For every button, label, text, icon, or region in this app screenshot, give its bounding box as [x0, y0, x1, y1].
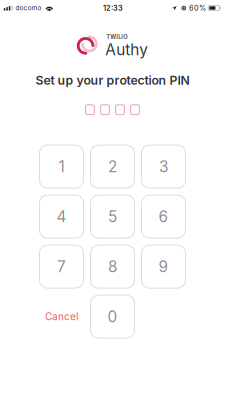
staticText: TWILIO [106, 33, 127, 40]
button[interactable]: 4 [39, 195, 83, 238]
button[interactable]: 7 [39, 245, 83, 288]
staticText: Authy [105, 40, 148, 59]
staticText: 12:33 [103, 4, 123, 12]
button[interactable]: 9 [141, 245, 185, 288]
button[interactable]: 2 [90, 145, 134, 188]
staticText: 6 [158, 207, 168, 226]
button[interactable]: 5 [90, 195, 134, 238]
staticText: 7 [57, 257, 66, 276]
button[interactable]: 8 [90, 245, 134, 288]
staticText: 4 [56, 207, 66, 226]
button[interactable]: 0 [90, 295, 134, 338]
staticText: 60% [189, 4, 206, 12]
button[interactable]: 6 [141, 195, 185, 238]
button[interactable]: 3 [141, 145, 185, 188]
button[interactable]: Cancel [39, 295, 83, 338]
button[interactable]: 1 [39, 145, 83, 188]
staticText: Cancel [45, 311, 78, 323]
staticText: 5 [108, 207, 117, 226]
staticText: 0 [107, 307, 117, 326]
staticText: 9 [158, 257, 168, 276]
staticText: 8 [108, 257, 117, 276]
staticText: 1 [58, 157, 64, 176]
staticText: Set up your protection PIN [35, 73, 189, 88]
staticText: docomo [15, 4, 41, 12]
staticText: 3 [159, 157, 168, 176]
staticText: 2 [108, 157, 117, 176]
